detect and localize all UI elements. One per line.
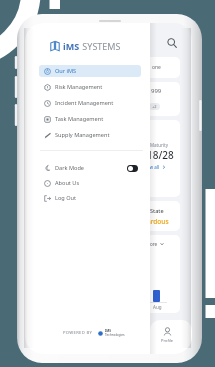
staticText: Task Management bbox=[55, 115, 104, 123]
staticText: Supply Management bbox=[55, 131, 110, 139]
button[interactable]: Profile bbox=[161, 327, 174, 343]
button[interactable]: Incident Management bbox=[39, 97, 141, 109]
button[interactable]: About Us bbox=[39, 177, 141, 189]
staticText: Our iMS bbox=[55, 67, 77, 75]
button[interactable]: Our iMS bbox=[39, 65, 141, 77]
staticText: State bbox=[150, 207, 164, 214]
staticText: POWERED BY bbox=[63, 330, 93, 336]
staticText: Risk Management bbox=[55, 83, 103, 91]
button[interactable]: Log Out bbox=[39, 192, 141, 204]
staticText: 18/28 bbox=[147, 148, 174, 162]
staticText: Technologies bbox=[105, 333, 125, 337]
staticText: SYSTEMS bbox=[80, 40, 121, 52]
staticText: Profile bbox=[161, 338, 174, 343]
button[interactable]: Risk Management bbox=[39, 81, 141, 93]
button[interactable]: ew all bbox=[147, 164, 166, 170]
staticText: Dark Mode bbox=[55, 164, 85, 172]
staticText: iMS bbox=[63, 40, 80, 52]
staticText: ardous bbox=[147, 217, 169, 226]
staticText: ew all bbox=[147, 164, 160, 170]
button[interactable]: ore bbox=[144, 239, 166, 248]
staticText: ore bbox=[150, 241, 158, 247]
button[interactable]: +2 bbox=[149, 103, 160, 110]
staticText: About Us bbox=[55, 179, 80, 187]
button[interactable]: Search bbox=[167, 38, 177, 48]
staticText: one bbox=[152, 64, 161, 71]
button[interactable]: Toggle dark mode bbox=[127, 165, 138, 172]
button[interactable]: Task Management bbox=[39, 113, 141, 125]
staticText: Incident Management bbox=[55, 99, 114, 107]
staticText: Aug bbox=[153, 304, 162, 310]
staticText: 999 bbox=[151, 87, 162, 95]
button[interactable]: Dark Mode bbox=[39, 162, 141, 174]
staticText: IMS bbox=[105, 329, 112, 333]
staticText: Log Out bbox=[55, 194, 77, 202]
staticText: Maturity bbox=[150, 142, 168, 148]
button[interactable]: Supply Management bbox=[39, 129, 141, 141]
staticText: +2 bbox=[152, 104, 157, 109]
